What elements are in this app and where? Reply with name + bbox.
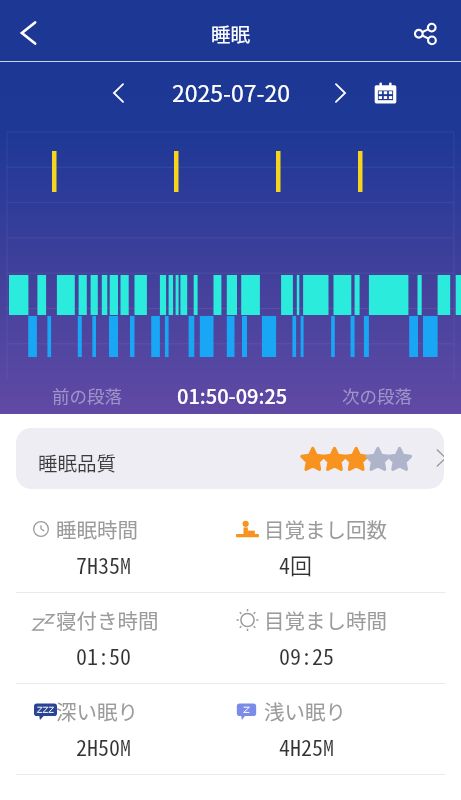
staticText: 前の段落: [52, 383, 122, 408]
button[interactable]: Share: [403, 11, 448, 56]
staticText: 4H25M: [279, 730, 335, 762]
staticText: 睡眠: [211, 19, 251, 47]
button[interactable]: Previous day: [100, 75, 136, 111]
button[interactable]: 睡眠品質: [16, 428, 444, 489]
staticText: 次の段落: [342, 383, 412, 408]
staticText: 01:50: [76, 639, 132, 671]
staticText: 2H50M: [76, 730, 132, 762]
staticText: 09:25: [279, 639, 335, 671]
button[interactable]: 前の段落: [32, 375, 142, 415]
staticText: 7H35M: [76, 548, 132, 580]
button[interactable]: 次の段落: [322, 375, 432, 415]
staticText: 01:50-09:25: [177, 381, 288, 410]
button[interactable]: 寝付き時間: [33, 593, 233, 683]
button[interactable]: 深い眠り: [33, 684, 233, 774]
button[interactable]: 目覚まし回数: [236, 502, 436, 592]
staticText: 4回: [279, 548, 313, 580]
staticText: 寝付き時間: [56, 605, 159, 635]
staticText: 2025-07-20: [172, 75, 291, 108]
button[interactable]: 浅い眠り: [236, 684, 436, 774]
staticText: 目覚まし時間: [264, 605, 387, 635]
staticText: 深い眠り: [56, 696, 138, 726]
button[interactable]: Calendar: [367, 75, 403, 111]
staticText: 睡眠品質: [38, 448, 117, 476]
staticText: 睡眠時間: [56, 514, 138, 544]
button[interactable]: 睡眠時間: [33, 502, 233, 592]
staticText: 浅い眠り: [264, 696, 346, 726]
button[interactable]: Back: [5, 10, 51, 56]
button[interactable]: 目覚まし時間: [236, 593, 436, 683]
button[interactable]: Next day: [322, 75, 358, 111]
staticText: 目覚まし回数: [264, 514, 387, 544]
